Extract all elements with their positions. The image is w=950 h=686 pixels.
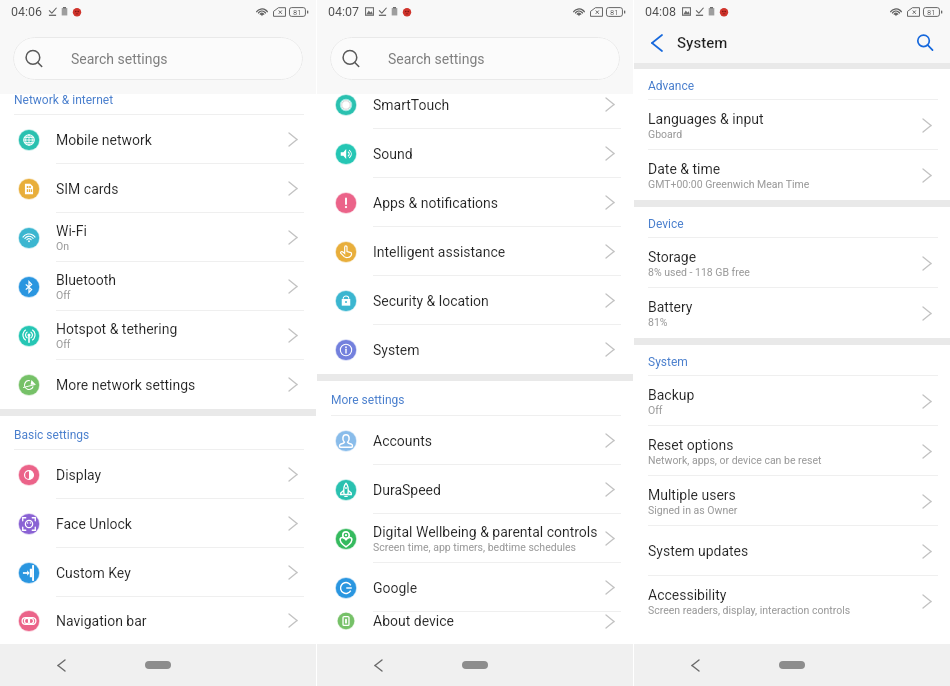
button[interactable]: Google [317, 563, 633, 612]
staticText: 8% used - 118 GB free [648, 266, 750, 278]
button[interactable]: Home [137, 653, 179, 677]
staticText: Screen readers, display, interaction con… [648, 604, 851, 616]
staticText: More network settings [56, 377, 196, 393]
staticText: Hotspot & tethering [56, 321, 178, 337]
button[interactable]: Storage [634, 238, 950, 288]
staticText: More settings [331, 393, 405, 407]
staticText: Screen time, app timers, bedtime schedul… [373, 541, 576, 553]
staticText: About device [373, 613, 454, 629]
button[interactable]: Battery [634, 288, 950, 338]
staticText: Sound [373, 146, 413, 162]
button[interactable]: System updates [634, 526, 950, 576]
staticText: Display [56, 467, 102, 483]
staticText: Accessibility [648, 587, 727, 603]
button[interactable]: Back [644, 30, 670, 56]
staticText: Search settings [71, 51, 168, 67]
staticText: Off [56, 338, 71, 350]
staticText: System [677, 34, 728, 52]
button[interactable]: Search settings [13, 37, 303, 80]
button[interactable]: Languages & input [634, 100, 950, 150]
button[interactable]: Hotspot & tethering [0, 311, 316, 360]
staticText: Network & internet [14, 94, 114, 107]
staticText: System updates [648, 543, 749, 559]
button[interactable]: More network settings [0, 360, 316, 409]
staticText: Multiple users [648, 487, 736, 503]
staticText: Off [56, 289, 71, 301]
button[interactable]: Reset options [634, 426, 950, 476]
button[interactable]: Face Unlock [0, 499, 316, 548]
button[interactable]: Multiple users [634, 476, 950, 526]
button[interactable]: Wi-Fi [0, 213, 316, 262]
button[interactable]: SIM cards [0, 164, 316, 213]
button[interactable]: Home [454, 653, 496, 677]
button[interactable]: Display [0, 450, 316, 499]
staticText: Face Unlock [56, 516, 132, 532]
button[interactable]: Digital Wellbeing & parental controls [317, 514, 633, 563]
staticText: Google [373, 580, 418, 596]
staticText: System [648, 355, 688, 369]
button[interactable]: Navigation bar [0, 597, 316, 644]
staticText: Intelligent assistance [373, 244, 506, 260]
staticText: 04:07 [328, 4, 360, 19]
staticText: SIM cards [56, 181, 119, 197]
button[interactable]: Search settings [330, 37, 620, 80]
button[interactable]: Date & time [634, 150, 950, 200]
staticText: System [373, 342, 420, 358]
staticText: 81 [293, 8, 302, 17]
staticText: On [56, 240, 70, 252]
staticText: Off [648, 404, 663, 416]
button[interactable]: Custom Key [0, 548, 316, 597]
staticText: Device [648, 217, 684, 231]
staticText: Reset options [648, 437, 734, 453]
button[interactable]: Accessibility [634, 576, 950, 626]
staticText: Languages & input [648, 111, 764, 127]
button[interactable]: Search [912, 30, 938, 56]
staticText: 81 [610, 8, 619, 17]
staticText: Search settings [388, 51, 485, 67]
staticText: Navigation bar [56, 613, 147, 629]
staticText: Gboard [648, 128, 683, 140]
staticText: Advance [648, 79, 695, 93]
button[interactable]: Accounts [317, 416, 633, 465]
staticText: 81% [648, 316, 668, 328]
staticText: Signed in as Owner [648, 504, 738, 516]
button[interactable]: Back [48, 652, 74, 678]
staticText: Basic settings [14, 428, 90, 442]
button[interactable]: Back [365, 652, 391, 678]
button[interactable]: Backup [634, 376, 950, 426]
staticText: 04:06 [11, 4, 43, 19]
staticText: 81 [927, 8, 936, 17]
staticText: DuraSpeed [373, 482, 441, 498]
button[interactable]: System [317, 325, 633, 374]
button[interactable]: Sound [317, 129, 633, 178]
button[interactable]: SmartTouch [317, 94, 633, 129]
staticText: SmartTouch [373, 97, 450, 113]
button[interactable]: Mobile network [0, 115, 316, 164]
staticText: Network, apps, or device can be reset [648, 454, 822, 466]
button[interactable]: About device [317, 612, 633, 630]
button[interactable]: DuraSpeed [317, 465, 633, 514]
button[interactable]: Bluetooth [0, 262, 316, 311]
button[interactable]: Home [771, 653, 813, 677]
button[interactable]: Intelligent assistance [317, 227, 633, 276]
staticText: Bluetooth [56, 272, 116, 288]
staticText: 04:08 [645, 4, 677, 19]
staticText: Apps & notifications [373, 195, 499, 211]
staticText: GMT+00:00 Greenwich Mean Time [648, 178, 810, 190]
staticText: Security & location [373, 293, 489, 309]
staticText: Accounts [373, 433, 433, 449]
staticText: Digital Wellbeing & parental controls [373, 524, 598, 540]
staticText: Mobile network [56, 132, 152, 148]
staticText: Wi-Fi [56, 223, 87, 239]
button[interactable]: Security & location [317, 276, 633, 325]
button[interactable]: Back [682, 652, 708, 678]
staticText: Battery [648, 299, 693, 315]
staticText: Storage [648, 249, 697, 265]
staticText: Custom Key [56, 565, 131, 581]
staticText: Backup [648, 387, 695, 403]
staticText: Date & time [648, 161, 721, 177]
button[interactable]: Apps & notifications [317, 178, 633, 227]
